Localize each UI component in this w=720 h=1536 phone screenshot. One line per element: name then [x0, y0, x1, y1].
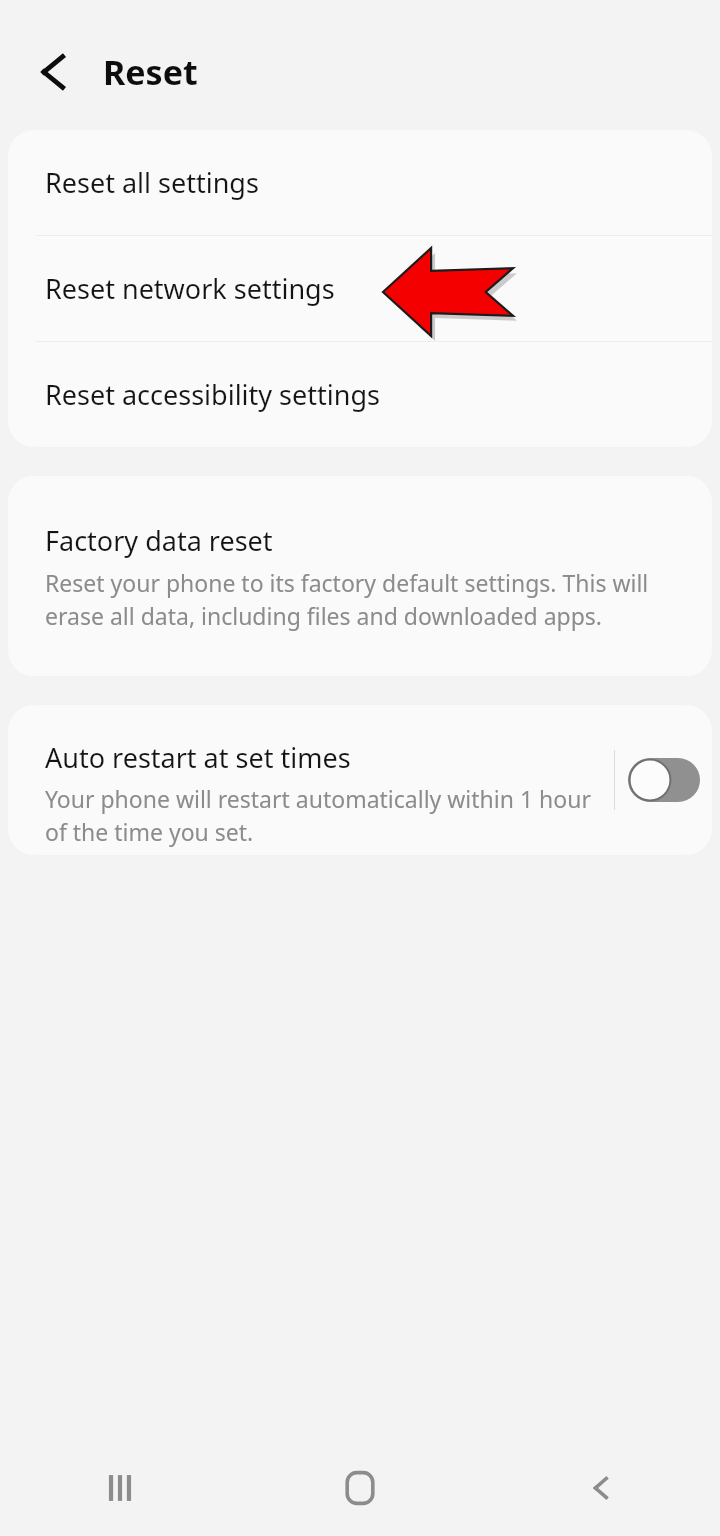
button[interactable]: Back	[28, 48, 76, 96]
staticText: Reset	[103, 49, 198, 95]
staticText: Factory data reset	[45, 522, 273, 559]
button[interactable]: Reset accessibility settings	[8, 342, 712, 447]
staticText: Your phone will restart automatically wi…	[45, 783, 606, 848]
staticText: Reset your phone to its factory default …	[45, 567, 668, 632]
button[interactable]: Reset all settings	[8, 130, 712, 235]
button[interactable]: Factory data reset	[8, 476, 712, 676]
staticText: Reset network settings	[45, 270, 335, 307]
button[interactable]: Auto restart at set times toggle, off	[615, 705, 712, 855]
staticText: Reset all settings	[45, 164, 259, 201]
button[interactable]: Recent apps	[0, 1440, 240, 1536]
button[interactable]: Reset network settings	[8, 236, 712, 341]
staticText: Reset accessibility settings	[45, 376, 380, 413]
button[interactable]: Home	[240, 1440, 480, 1536]
staticText: Auto restart at set times	[45, 739, 351, 776]
button[interactable]: Auto restart at set times	[8, 705, 614, 855]
button[interactable]: Back	[480, 1440, 720, 1536]
